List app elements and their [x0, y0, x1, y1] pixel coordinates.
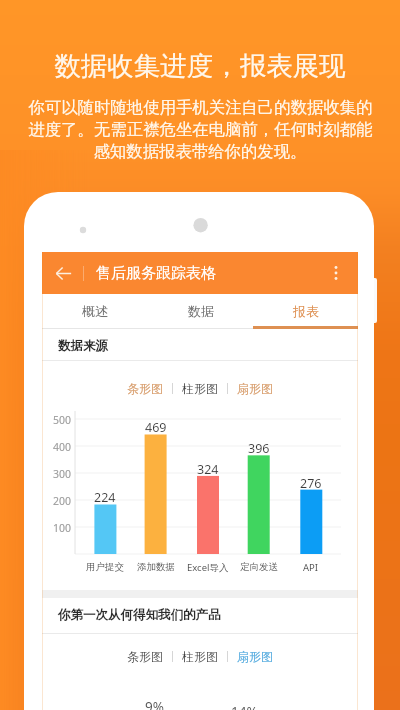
button[interactable]: 数据 [148, 294, 253, 329]
staticText: 14% [231, 703, 258, 710]
staticText: 400 [53, 440, 72, 454]
staticText: 柱形图 [182, 649, 218, 664]
staticText: 扇形图 [237, 649, 273, 664]
staticText: 224 [94, 489, 116, 506]
staticText: 你可以随时随地使用手机关注自己的数据收集的 [28, 97, 373, 118]
button[interactable]: More options [324, 261, 348, 285]
staticText: 扇形图 [237, 381, 273, 396]
staticText: API [303, 561, 319, 574]
staticText: 添加数据 [137, 561, 175, 573]
staticText: 定向发送 [240, 561, 278, 573]
staticText: 用户提交 [86, 561, 124, 573]
staticText: 200 [53, 494, 72, 508]
button[interactable]: 条形图 [127, 381, 163, 396]
staticText: 数据收集进度，报表展现 [0, 49, 400, 82]
staticText: 报表 [293, 303, 319, 319]
staticText: 9% [145, 698, 164, 710]
staticText: 条形图 [127, 649, 163, 664]
staticText: 100 [53, 521, 72, 535]
staticText: Excel导入 [187, 561, 229, 574]
button[interactable]: 报表 [253, 294, 358, 329]
staticText: 进度了。无需正襟危坐在电脑前，任何时刻都能 [28, 119, 373, 140]
staticText: 469 [145, 419, 167, 436]
staticText: 条形图 [127, 381, 163, 396]
staticText: 300 [53, 467, 72, 481]
staticText: 售后服务跟踪表格 [96, 264, 216, 283]
button[interactable]: 扇形图 [237, 649, 273, 664]
button[interactable]: 扇形图 [237, 381, 273, 396]
staticText: 柱形图 [182, 381, 218, 396]
staticText: 感知数据报表带给你的发现。 [93, 141, 307, 162]
staticText: 数据 [188, 303, 214, 319]
button[interactable]: 柱形图 [182, 381, 218, 396]
button[interactable]: 条形图 [127, 649, 163, 664]
staticText: 数据来源 [58, 338, 108, 354]
staticText: 324 [197, 461, 219, 478]
staticText: 396 [248, 440, 270, 457]
staticText: 276 [300, 475, 322, 492]
staticText: 概述 [82, 303, 108, 319]
button[interactable]: 概述 [42, 294, 148, 329]
button[interactable]: 柱形图 [182, 649, 218, 664]
staticText: 你第一次从何得知我们的产品 [58, 607, 221, 623]
staticText: 500 [53, 413, 72, 427]
button[interactable]: Back [51, 261, 75, 285]
